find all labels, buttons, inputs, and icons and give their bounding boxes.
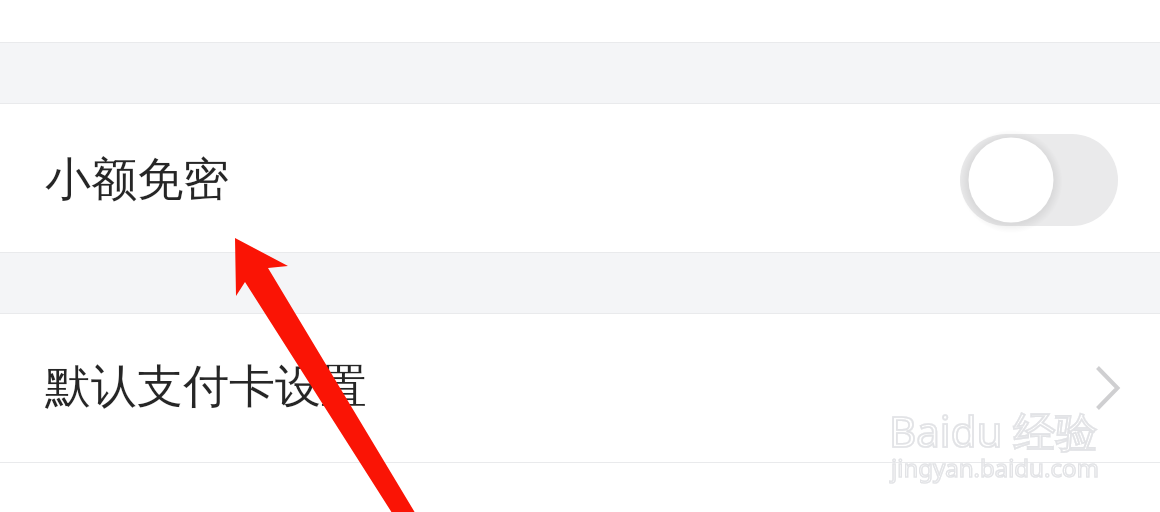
button[interactable]: 默认支付卡设置 xyxy=(0,314,1160,462)
button[interactable]: 小额免密 xyxy=(0,104,1160,252)
staticText: jingyan.baidu.com xyxy=(891,451,1099,484)
staticText: 默认支付卡设置 xyxy=(45,358,367,416)
staticText: 小额免密 xyxy=(45,151,229,209)
button[interactable]: Small amount password free toggle xyxy=(952,124,1126,232)
button[interactable]: Open default payment card settings xyxy=(1085,356,1129,420)
staticText: Baidu 经验 xyxy=(889,402,1098,459)
